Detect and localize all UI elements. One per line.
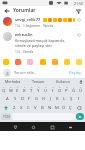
button[interactable]: A [3,94,11,103]
staticText: 21:50 [74,1,83,6]
staticText: K [56,96,59,102]
button[interactable]: Kullanıcı [51,78,76,85]
staticText: sevgi_celik77 [15,17,41,22]
staticText: A [6,96,9,102]
button[interactable]: G [33,94,40,103]
staticText: I [52,88,54,94]
staticText: P [65,88,68,94]
button[interactable]: I [75,94,82,103]
staticText: Ç [69,105,72,111]
button[interactable]: B [39,103,46,112]
staticText: S [14,96,17,102]
staticText: 7 [45,85,47,88]
staticText: X [20,105,23,111]
button[interactable]: Emoji [76,59,82,65]
button[interactable]: Paylaş [68,70,82,75]
button[interactable]: 2 [7,85,14,94]
staticText: L [63,96,66,102]
button[interactable]: 1 [1,85,7,94]
button[interactable]: K [54,94,61,103]
button[interactable]: Emoji [15,59,21,65]
button[interactable]: 5 [28,85,35,94]
button[interactable]: Like [76,32,82,38]
staticText: Ö [62,105,66,111]
button[interactable]: Z [11,103,18,112]
button[interactable]: C [25,103,32,112]
staticText: U [44,88,48,94]
button[interactable]: M [53,103,60,112]
staticText: Ü [79,88,83,94]
button[interactable]: S [11,94,19,103]
staticText: Tamam [32,79,45,84]
button[interactable]: Ö [60,103,67,112]
staticText: ?123 [3,115,10,119]
button[interactable]: 7 [42,85,49,94]
staticText: D [21,96,25,102]
button[interactable]: ?123 [1,113,11,120]
staticText: Yorumlar [13,7,36,14]
staticText: Q [2,88,6,94]
button[interactable]: Like [76,17,82,23]
button[interactable]: 6 [35,85,42,94]
button[interactable]: 4 [21,85,28,94]
staticText: O [58,88,62,94]
staticText: 13s [15,24,21,28]
staticText: V [34,105,37,111]
button[interactable]: H [40,94,47,103]
button[interactable]: L [61,94,68,103]
button[interactable]: Home [29,123,37,131]
button[interactable]: V [32,103,39,112]
staticText: 12s [15,50,21,54]
button[interactable]: X [18,103,25,112]
staticText: 9 [59,85,61,88]
button[interactable]: Emoji [52,59,58,65]
button[interactable]: 3 [14,85,21,94]
button[interactable]: Recents [48,123,56,131]
button[interactable]: 0 [63,85,70,94]
button[interactable]: J [47,94,54,103]
staticText: F [28,96,31,102]
button[interactable]: Filter [74,7,82,15]
staticText: 0 [66,85,68,88]
button[interactable]: Yorum ekle... [14,70,68,75]
button[interactable]: Voice input [76,78,85,85]
button[interactable]: Emoji [27,59,33,65]
staticText: 1 beğenme [23,24,41,28]
button[interactable]: 1 [70,85,77,94]
staticText: 1 [3,85,5,88]
button[interactable]: Backspace [74,103,84,112]
staticText: Konuşkasd moçok kapandır, sitede ve payl… [15,38,76,48]
button[interactable]: 8 [49,85,56,94]
button[interactable]: 2 [77,85,84,94]
button[interactable]: Ş [68,94,75,103]
staticText: Yanıtla [43,24,54,28]
button[interactable]: Send [76,113,84,120]
button[interactable]: Emoji [64,59,70,65]
button[interactable]: Back [11,123,19,131]
button[interactable]: 9 [56,85,63,94]
staticText: 4 [24,85,26,88]
button[interactable]: Tamam [26,78,51,85]
staticText: E [16,88,19,94]
staticText: Z [13,105,16,111]
staticText: H [42,96,46,102]
button[interactable]: zektuslin [0,30,85,56]
button[interactable]: N [46,103,53,112]
staticText: Y [37,88,40,94]
staticText: 6 [38,85,40,88]
staticText: Ş [70,96,73,102]
staticText: W [9,88,13,94]
button[interactable]: F [26,94,33,103]
staticText: M [55,105,59,111]
button[interactable]: sevgi_celik77 [0,15,85,30]
button[interactable]: Ç [67,103,74,112]
button[interactable]: Shift [1,103,11,112]
button[interactable]: D [19,94,26,103]
button[interactable]: Emoji [40,59,46,65]
button[interactable]: Emoji [3,59,9,65]
button[interactable]: Merhaba [0,78,26,85]
button[interactable]: Keyboard toggle [66,123,74,131]
staticText: 2 [10,85,12,88]
button[interactable]: Back [3,7,11,15]
